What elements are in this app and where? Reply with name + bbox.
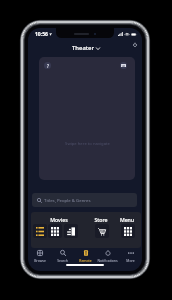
button[interactable]: Movies: [39, 216, 79, 223]
button[interactable]: Theater: [72, 44, 100, 52]
button[interactable]: Help: [44, 62, 51, 69]
button[interactable]: More: [119, 248, 142, 265]
button[interactable]: Keyboard: [120, 62, 127, 69]
staticText: Titles, People & Genres: [44, 197, 91, 203]
button[interactable]: Titles, People & Genres: [32, 193, 137, 207]
button[interactable]: List view: [33, 224, 47, 238]
button[interactable]: Menu: [107, 216, 141, 223]
staticText: 10:56: [35, 31, 48, 38]
button[interactable]: Help: [39, 57, 135, 180]
button[interactable]: Store: [95, 224, 109, 238]
button[interactable]: Search: [51, 248, 74, 265]
staticText: Search: [57, 258, 68, 263]
staticText: More: [126, 258, 135, 263]
button[interactable]: Power: [130, 40, 140, 50]
staticText: Theater: [72, 44, 94, 52]
button[interactable]: Store: [81, 216, 121, 223]
staticText: Movies: [39, 216, 79, 223]
button[interactable]: Remote: [74, 248, 97, 265]
staticText: Remote: [79, 258, 92, 263]
button[interactable]: Grid view: [48, 224, 62, 238]
button[interactable]: Browse: [28, 248, 51, 265]
staticText: Notifications: [97, 258, 118, 263]
staticText: ?: [47, 63, 49, 69]
staticText: Menu: [107, 216, 141, 223]
button[interactable]: Notifications: [96, 248, 119, 265]
staticText: Store: [81, 216, 121, 223]
button[interactable]: Menu: [121, 224, 135, 238]
staticText: Browse: [34, 258, 46, 263]
button[interactable]: Detail view: [64, 224, 78, 238]
staticText: Swipe here to navigate: [65, 141, 110, 147]
